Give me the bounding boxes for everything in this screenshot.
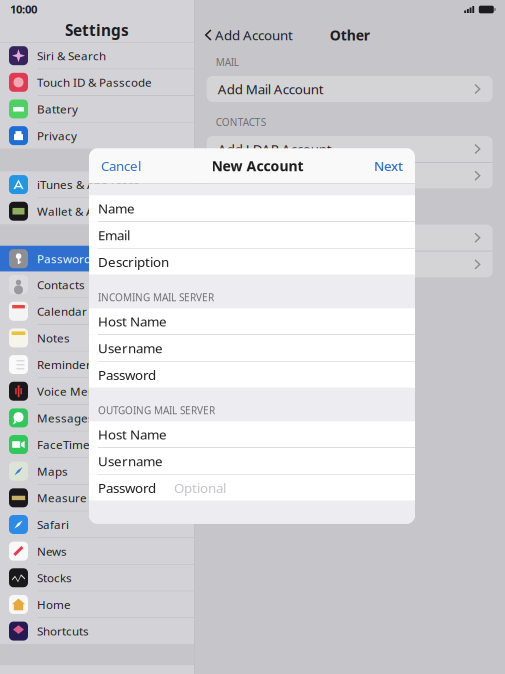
- staticText: OUTGOING MAIL SERVER: [98, 404, 215, 417]
- button[interactable]: iTunes & App Store: [0, 172, 194, 197]
- staticText: News: [37, 543, 67, 559]
- staticText: Email: [98, 226, 130, 244]
- staticText: Stocks: [37, 570, 72, 585]
- staticText: Touch ID & Passcode: [37, 75, 152, 90]
- staticText: Voice Memos: [37, 383, 112, 399]
- button[interactable]: Siri & Search: [0, 43, 194, 69]
- button[interactable]: Passwords: [0, 246, 194, 272]
- staticText: Optional: [174, 479, 226, 497]
- button[interactable]: FaceTime: [0, 431, 194, 457]
- staticText: Host Name: [98, 312, 167, 330]
- staticText: Host Name: [98, 425, 167, 443]
- button[interactable]: Wallet & Apple Pay: [0, 198, 194, 224]
- staticText: Measure: [37, 490, 87, 505]
- staticText: Password: [98, 366, 156, 384]
- button[interactable]: Measure: [0, 485, 194, 511]
- button[interactable]: Voice Memos: [0, 378, 194, 404]
- button[interactable]: Add CardDAV Account: [207, 163, 493, 189]
- staticText: Add CardDAV Account: [218, 167, 352, 184]
- button[interactable]: Notes: [0, 325, 194, 351]
- staticText: New Account: [211, 156, 303, 175]
- staticText: Home: [37, 597, 71, 612]
- button[interactable]: Add Account: [195, 22, 325, 48]
- button[interactable]: Add CalDAV Account: [207, 225, 493, 251]
- staticText: INCOMING MAIL SERVER: [98, 291, 214, 304]
- staticText: Messages: [37, 410, 94, 426]
- staticText: Add Mail Account: [218, 80, 324, 98]
- staticText: Battery: [37, 101, 78, 117]
- staticText: Notes: [37, 330, 70, 346]
- button[interactable]: News: [0, 538, 194, 564]
- staticText: Password: [98, 479, 156, 497]
- button[interactable]: Home: [0, 591, 194, 617]
- button[interactable]: Reminders: [0, 352, 194, 377]
- button[interactable]: Touch ID & Passcode: [0, 69, 194, 95]
- button[interactable]: Calendar: [0, 298, 194, 324]
- staticText: Safari: [37, 517, 69, 532]
- button[interactable]: Cancel: [89, 148, 153, 183]
- button[interactable]: Privacy: [0, 123, 194, 148]
- button[interactable]: Shortcuts: [0, 618, 194, 644]
- button[interactable]: Stocks: [0, 565, 194, 591]
- staticText: Username: [98, 452, 163, 470]
- button[interactable]: Next: [362, 148, 415, 183]
- staticText: Privacy: [37, 128, 77, 143]
- button[interactable]: Battery: [0, 96, 194, 122]
- staticText: MAIL: [216, 55, 239, 69]
- staticText: Siri & Search: [37, 48, 106, 63]
- staticText: Description: [98, 253, 169, 271]
- staticText: CONTACTS: [216, 115, 266, 129]
- staticText: Reminders: [37, 357, 97, 372]
- staticText: Shortcuts: [37, 623, 89, 639]
- staticText: Name: [98, 199, 135, 217]
- staticText: Next: [374, 157, 403, 175]
- staticText: Cancel: [101, 157, 141, 175]
- button[interactable]: Add Subscribed Calendar: [207, 251, 493, 277]
- staticText: 10:00: [10, 1, 37, 16]
- button[interactable]: Messages: [0, 405, 194, 431]
- button[interactable]: Contacts: [0, 272, 194, 297]
- button[interactable]: Safari: [0, 511, 194, 537]
- staticText: Maps: [37, 463, 68, 479]
- staticText: Contacts: [37, 277, 85, 292]
- staticText: Passwords: [37, 251, 97, 266]
- button[interactable]: Add LDAP Account: [207, 136, 493, 162]
- staticText: Add Account: [215, 26, 293, 44]
- staticText: Settings: [65, 20, 129, 40]
- staticText: iTunes & App Store: [37, 177, 140, 192]
- staticText: Wallet & Apple Pay: [37, 203, 140, 219]
- staticText: Calendar: [37, 304, 87, 319]
- button[interactable]: Maps: [0, 458, 194, 484]
- staticText: Add LDAP Account: [218, 140, 332, 158]
- staticText: FaceTime: [37, 437, 90, 452]
- staticText: Other: [330, 26, 370, 44]
- staticText: Username: [98, 339, 163, 357]
- button[interactable]: Add Mail Account: [207, 76, 493, 102]
